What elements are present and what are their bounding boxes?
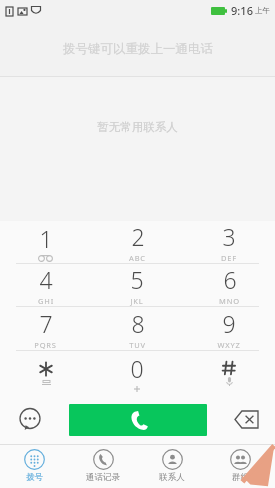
staticText: 联系人: [159, 472, 185, 483]
staticText: 1: [39, 223, 53, 254]
staticText: WXYZ: [217, 340, 241, 350]
staticText: 通话记录: [86, 472, 120, 483]
staticText: 拨号: [26, 472, 43, 483]
staticText: 拨号键可以重拨上一通电话: [63, 41, 213, 57]
button[interactable]: 3: [183, 221, 275, 263]
staticText: 3: [222, 221, 236, 252]
button[interactable]: Messages: [15, 404, 45, 434]
staticText: TUV: [129, 340, 146, 350]
button[interactable]: 联系人: [137, 444, 206, 488]
staticText: 上午: [255, 6, 270, 15]
button[interactable]: 1: [0, 221, 91, 263]
button[interactable]: 2: [91, 221, 183, 263]
button[interactable]: [0, 351, 91, 394]
staticText: ABC: [129, 253, 146, 263]
button[interactable]: 拨号: [0, 444, 68, 488]
staticText: 5: [130, 264, 144, 295]
button[interactable]: 8: [91, 307, 183, 350]
button[interactable]: [183, 351, 275, 394]
staticText: 暂无常用联系人: [97, 120, 178, 134]
button[interactable]: 0: [91, 351, 183, 394]
staticText: 0: [130, 353, 144, 384]
button[interactable]: 5: [91, 264, 183, 306]
staticText: 群组: [232, 472, 249, 483]
button[interactable]: 9: [183, 307, 275, 350]
button[interactable]: Backspace: [230, 403, 262, 435]
button[interactable]: Call: [69, 404, 207, 436]
button[interactable]: 4: [0, 264, 91, 306]
staticText: GHI: [38, 296, 54, 306]
staticText: 8: [131, 308, 145, 339]
staticText: 7: [39, 308, 53, 339]
button[interactable]: 群组: [206, 444, 275, 488]
staticText: 9:16: [231, 3, 253, 18]
staticText: MNO: [219, 296, 240, 306]
staticText: DEF: [221, 253, 237, 263]
staticText: 4: [39, 264, 53, 295]
staticText: 9: [222, 308, 236, 339]
button[interactable]: 7: [0, 307, 91, 350]
staticText: JKL: [130, 296, 144, 306]
button[interactable]: 6: [183, 264, 275, 306]
button[interactable]: 通话记录: [68, 444, 137, 488]
staticText: 6: [223, 264, 237, 295]
staticText: PQRS: [34, 340, 57, 350]
staticText: 2: [131, 221, 145, 252]
